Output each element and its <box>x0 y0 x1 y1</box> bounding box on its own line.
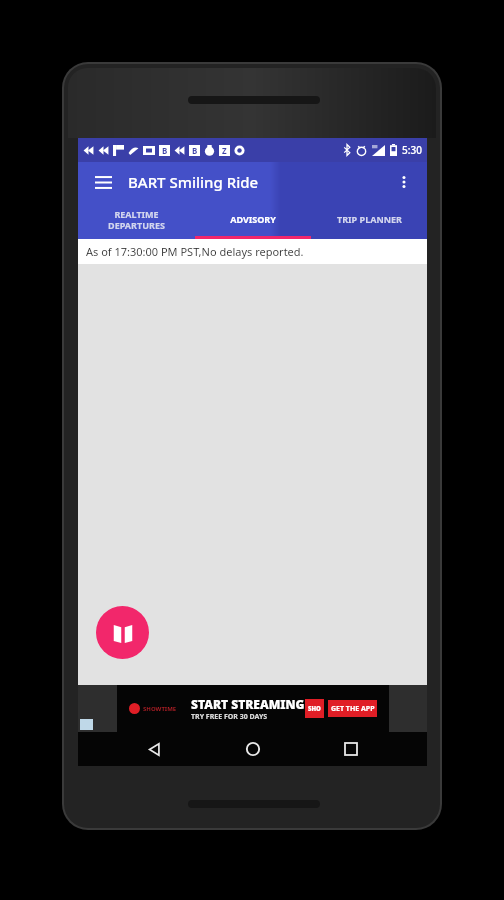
button[interactable]: Back <box>132 732 176 766</box>
staticText: As of 17:30:00 PM PST,No delays reported… <box>86 244 304 259</box>
button[interactable]: SHOWTIME <box>78 685 427 732</box>
staticText: SHOWTIME <box>143 705 177 713</box>
button[interactable]: REALTIME DEPARTURES <box>78 202 195 236</box>
button[interactable]: Open map <box>96 606 149 659</box>
button[interactable]: Recent apps <box>329 732 373 766</box>
button[interactable]: GET THE APP <box>328 700 377 717</box>
button[interactable]: More options <box>387 165 421 199</box>
button[interactable]: ADVISORY <box>195 202 311 236</box>
staticText: SHO <box>308 705 321 713</box>
staticText: Z <box>222 145 227 156</box>
staticText: TRY FREE FOR 30 DAYS <box>191 712 268 722</box>
staticText: 5:30 <box>402 143 422 157</box>
staticText: REALTIME DEPARTURES <box>108 208 165 231</box>
button[interactable]: TRIP PLANNER <box>311 202 427 236</box>
staticText: BART Smiling Ride <box>128 172 259 192</box>
staticText: START STREAMING <box>191 696 305 712</box>
staticText: B <box>192 145 198 156</box>
staticText: ADVISORY <box>230 213 276 225</box>
staticText: B <box>162 145 168 156</box>
button[interactable]: Home <box>231 732 275 766</box>
staticText: GET THE APP <box>331 704 375 714</box>
button[interactable]: Open navigation drawer <box>86 165 120 199</box>
staticText: TRIP PLANNER <box>337 213 402 225</box>
